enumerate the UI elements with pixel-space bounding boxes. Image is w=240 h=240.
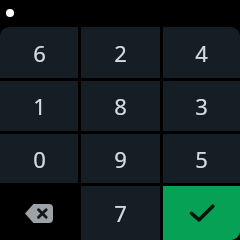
staticText: 1 xyxy=(33,91,46,121)
button[interactable]: Backspace xyxy=(0,186,78,240)
staticText: 9 xyxy=(114,144,127,174)
button[interactable]: 5 xyxy=(163,134,240,183)
button[interactable]: Confirm xyxy=(163,186,240,240)
button[interactable]: 3 xyxy=(163,81,240,131)
button[interactable]: 1 xyxy=(0,81,78,131)
button[interactable]: 6 xyxy=(0,27,78,78)
button[interactable]: 0 xyxy=(0,134,78,183)
button[interactable]: 7 xyxy=(81,186,160,240)
staticText: 4 xyxy=(195,38,208,68)
staticText: 5 xyxy=(195,144,208,174)
button[interactable]: 4 xyxy=(163,27,240,78)
button[interactable]: 8 xyxy=(81,81,160,131)
staticText: 8 xyxy=(114,91,127,121)
staticText: 0 xyxy=(33,144,46,174)
button[interactable]: 2 xyxy=(81,27,160,78)
staticText: 3 xyxy=(195,91,208,121)
button[interactable]: 9 xyxy=(81,134,160,183)
staticText: 7 xyxy=(114,198,127,228)
staticText: 6 xyxy=(33,38,46,68)
staticText: 2 xyxy=(114,38,127,68)
